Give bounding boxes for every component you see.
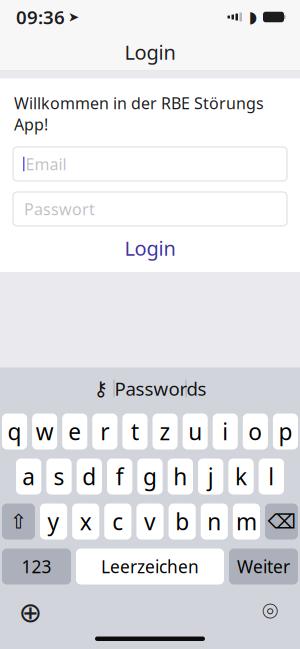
staticText: t bbox=[131, 416, 139, 446]
staticText: b bbox=[175, 506, 189, 536]
button[interactable]: v bbox=[136, 503, 163, 539]
button[interactable]: s bbox=[46, 458, 72, 494]
button[interactable]: a bbox=[16, 458, 41, 494]
staticText: u bbox=[188, 416, 202, 446]
button[interactable]: Shift bbox=[2, 503, 35, 539]
button[interactable]: k bbox=[228, 458, 254, 494]
button[interactable]: r bbox=[92, 413, 117, 449]
button[interactable]: 123 bbox=[2, 548, 71, 584]
staticText: ⌾ bbox=[262, 599, 278, 625]
staticText: d bbox=[82, 461, 96, 491]
staticText: p bbox=[278, 416, 292, 446]
button[interactable]: o bbox=[243, 413, 268, 449]
staticText: ➤ bbox=[68, 9, 79, 24]
button[interactable]: e bbox=[62, 413, 87, 449]
staticText: m bbox=[236, 506, 257, 536]
staticText: y bbox=[48, 506, 60, 536]
button[interactable]: l bbox=[259, 458, 284, 494]
button[interactable]: Login bbox=[0, 228, 300, 268]
button[interactable]: j bbox=[198, 458, 223, 494]
staticText: v bbox=[144, 506, 156, 536]
staticText: e bbox=[68, 416, 81, 446]
button[interactable]: i bbox=[213, 413, 238, 449]
button[interactable]: Change keyboard language bbox=[10, 597, 50, 627]
button[interactable]: Dictation bbox=[250, 597, 290, 627]
button[interactable]: Weiter bbox=[229, 548, 298, 584]
button[interactable]: g bbox=[137, 458, 163, 494]
staticText: k bbox=[235, 461, 247, 491]
staticText: Email bbox=[25, 153, 66, 175]
staticText: Passwords bbox=[114, 376, 206, 401]
staticText: s bbox=[53, 461, 64, 491]
staticText: ⇧ bbox=[10, 510, 27, 533]
staticText: i bbox=[222, 416, 228, 446]
button[interactable]: w bbox=[32, 413, 57, 449]
staticText: l bbox=[268, 461, 274, 491]
button[interactable]: ⚷ bbox=[93, 376, 206, 401]
button[interactable]: f bbox=[107, 458, 132, 494]
staticText: z bbox=[160, 416, 171, 446]
button[interactable]: Delete bbox=[265, 503, 298, 539]
button[interactable]: y bbox=[40, 503, 67, 539]
staticText: g bbox=[143, 461, 157, 491]
staticText: Willkommen in der RBE Störungs App! bbox=[14, 92, 264, 135]
button[interactable]: Leerzeichen bbox=[76, 548, 224, 584]
staticText: w bbox=[36, 416, 54, 446]
staticText: Passwort bbox=[24, 198, 95, 220]
staticText: j bbox=[208, 461, 214, 491]
staticText: Weiter bbox=[237, 555, 290, 578]
button[interactable]: b bbox=[169, 503, 196, 539]
button[interactable]: c bbox=[104, 503, 131, 539]
staticText: q bbox=[8, 416, 22, 446]
staticText: ⌫ bbox=[267, 510, 295, 533]
staticText: 09:36 bbox=[16, 5, 65, 29]
button[interactable]: x bbox=[72, 503, 99, 539]
staticText: r bbox=[100, 416, 109, 446]
button[interactable]: z bbox=[152, 413, 178, 449]
staticText: c bbox=[112, 506, 123, 536]
staticText: o bbox=[248, 416, 262, 446]
staticText: ⊕ bbox=[18, 597, 41, 628]
staticText: ◗ bbox=[248, 8, 256, 26]
staticText: a bbox=[22, 461, 35, 491]
button[interactable]: u bbox=[183, 413, 208, 449]
button[interactable]: d bbox=[77, 458, 102, 494]
button[interactable]: t bbox=[122, 413, 147, 449]
button[interactable]: q bbox=[2, 413, 27, 449]
staticText: 123 bbox=[21, 555, 51, 578]
button[interactable]: p bbox=[273, 413, 298, 449]
staticText: x bbox=[80, 506, 92, 536]
button[interactable]: n bbox=[201, 503, 228, 539]
staticText: Login bbox=[124, 235, 175, 261]
staticText: f bbox=[116, 461, 124, 491]
staticText: Login bbox=[124, 39, 175, 65]
button[interactable]: h bbox=[168, 458, 193, 494]
staticText: h bbox=[173, 461, 187, 491]
staticText: Leerzeichen bbox=[101, 555, 199, 578]
staticText: ⚷ bbox=[93, 377, 108, 400]
button[interactable]: m bbox=[233, 503, 260, 539]
staticText: n bbox=[207, 506, 221, 536]
